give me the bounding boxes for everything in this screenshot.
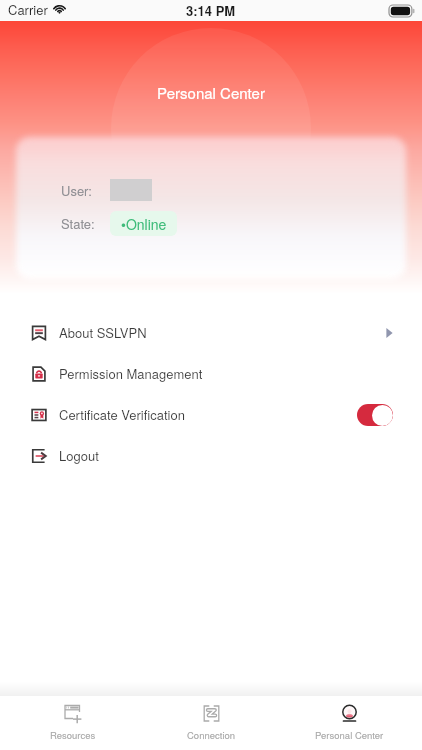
staticText: About SSLVPN — [59, 323, 147, 342]
button[interactable]: About SSLVPN — [0, 312, 422, 353]
button[interactable]: Certificate verification toggle — [357, 404, 393, 426]
staticText: Connection — [187, 728, 236, 742]
other: Open — [386, 327, 393, 339]
button[interactable]: Certificate Verification — [0, 394, 422, 435]
button[interactable]: Connection — [146, 700, 276, 746]
staticText: Personal Center — [315, 728, 384, 742]
staticText: •Online — [121, 214, 167, 234]
button[interactable]: Logout — [0, 435, 422, 476]
staticText: Permission Management — [59, 364, 203, 383]
staticText: Logout — [59, 446, 99, 465]
button[interactable]: Resources — [8, 700, 138, 746]
staticText: User: — [61, 181, 92, 200]
staticText: Carrier — [8, 0, 48, 19]
button[interactable]: Personal Center — [284, 700, 414, 746]
staticText: State: — [61, 214, 95, 233]
staticText: Resources — [50, 728, 96, 742]
staticText: Personal Center — [0, 82, 422, 103]
staticText: Certificate Verification — [59, 405, 185, 424]
staticText: 3:14 PM — [186, 1, 236, 20]
button[interactable]: Permission Management — [0, 353, 422, 394]
